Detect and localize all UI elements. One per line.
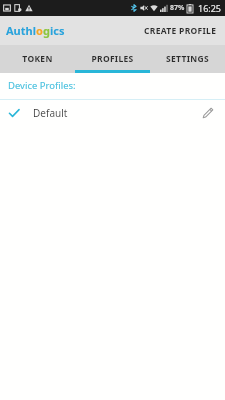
staticText: PROFILES (91, 53, 134, 65)
button[interactable]: TOKEN (0, 45, 75, 73)
staticText: CREATE PROFILE (144, 25, 217, 37)
staticText: g (43, 23, 50, 38)
staticText: 16:25 (198, 2, 222, 14)
button[interactable]: Default (0, 100, 225, 126)
button[interactable]: SETTINGS (150, 45, 225, 73)
staticText: SETTINGS (166, 53, 209, 65)
button[interactable]: PROFILES (75, 45, 150, 73)
button[interactable]: CREATE PROFILE (136, 19, 225, 43)
button[interactable]: Edit profile (199, 104, 217, 122)
staticText: Default (33, 106, 68, 120)
staticText: 87% (170, 3, 185, 13)
staticText: ics (50, 23, 65, 38)
staticText: TOKEN (22, 53, 53, 65)
staticText: Authl (6, 23, 36, 38)
staticText: Device Profiles: (8, 79, 76, 92)
button[interactable]: Authl (6, 23, 65, 38)
staticText: o (36, 23, 43, 38)
